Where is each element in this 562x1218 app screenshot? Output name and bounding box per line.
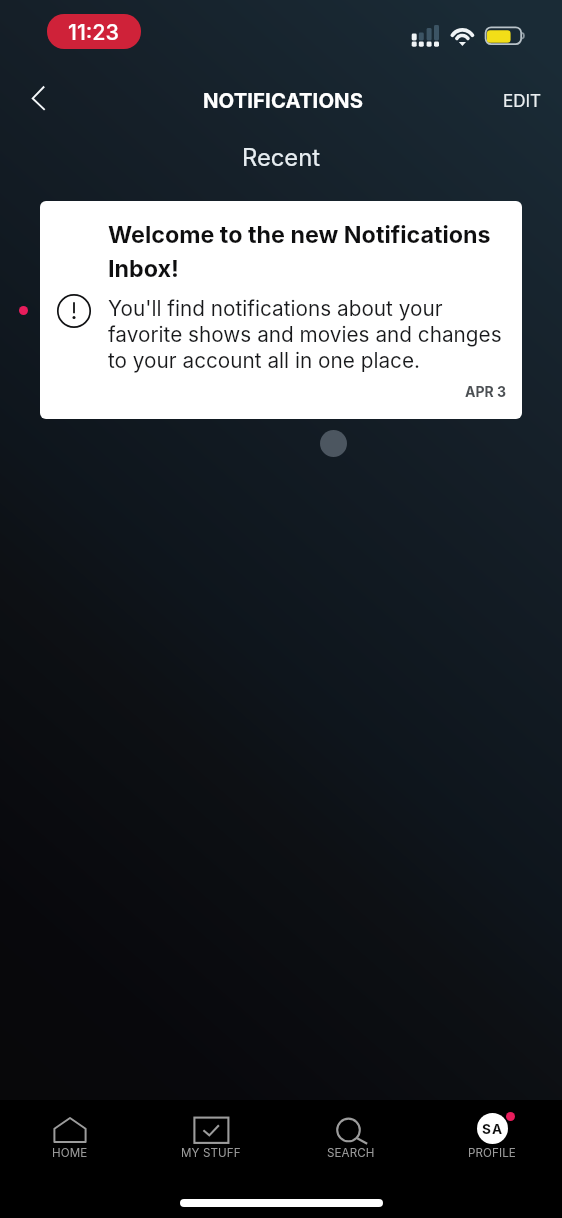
- button[interactable]: SEARCH: [281, 1113, 421, 1171]
- staticText: NOTIFICATIONS: [203, 88, 364, 113]
- button[interactable]: HOME: [0, 1113, 140, 1171]
- button[interactable]: MY STUFF: [141, 1113, 281, 1171]
- staticText: 11:23: [68, 19, 120, 45]
- staticText: EDIT: [503, 91, 542, 112]
- staticText: Welcome to the new Notifications Inbox!: [108, 220, 506, 282]
- staticText: Recent: [0, 143, 562, 172]
- staticText: MY STUFF: [181, 1146, 241, 1160]
- staticText: HOME: [52, 1146, 88, 1160]
- staticText: You'll find notifications about your fav…: [108, 296, 508, 373]
- button[interactable]: Back: [16, 76, 64, 124]
- button[interactable]: Welcome to the new Notifications Inbox!: [40, 201, 522, 419]
- button[interactable]: EDIT: [488, 81, 557, 122]
- staticText: APR 3: [40, 383, 506, 400]
- staticText: PROFILE: [468, 1146, 516, 1160]
- staticText: SA: [482, 1121, 504, 1137]
- button[interactable]: SA: [422, 1113, 562, 1171]
- staticText: SEARCH: [327, 1146, 375, 1160]
